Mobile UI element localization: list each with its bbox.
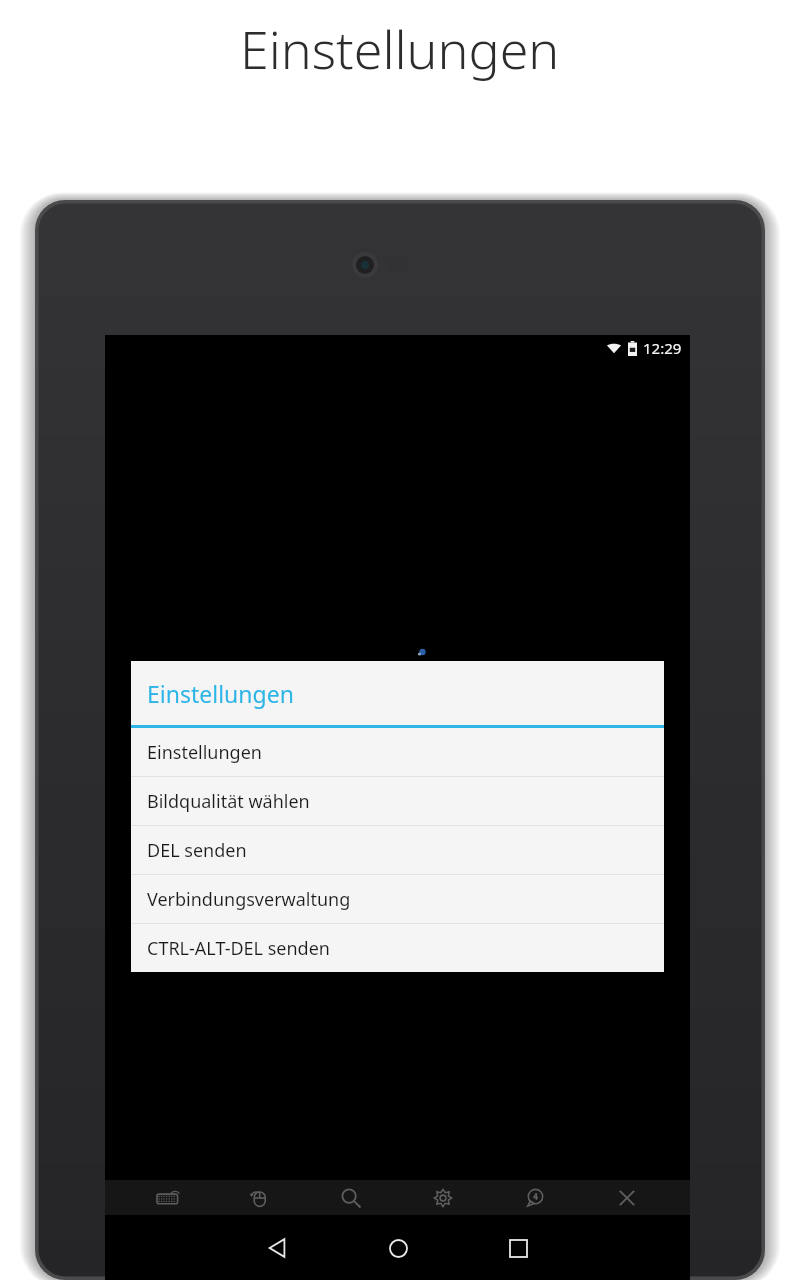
staticText: Einstellungen <box>240 13 560 84</box>
button[interactable]: Settings <box>426 1181 460 1215</box>
button[interactable]: Search <box>334 1181 368 1215</box>
button[interactable]: Close <box>610 1181 644 1215</box>
button[interactable]: Mouse <box>242 1181 276 1215</box>
button[interactable]: Einstellungen <box>131 728 664 776</box>
staticText: Verbindungsverwaltung <box>147 887 351 912</box>
button[interactable]: CTRL-ALT-DEL senden <box>131 924 664 972</box>
button[interactable]: Verbindungsverwaltung <box>131 875 664 923</box>
staticText: Bildqualität wählen <box>147 789 310 814</box>
staticText: CTRL-ALT-DEL senden <box>147 936 330 961</box>
button[interactable]: Messages <box>518 1181 552 1215</box>
staticText: Einstellungen <box>147 678 294 709</box>
staticText: DEL senden <box>147 838 247 863</box>
button[interactable]: Bildqualität wählen <box>131 777 664 825</box>
button[interactable]: DEL senden <box>131 826 664 874</box>
staticText: Einstellungen <box>147 740 262 765</box>
button[interactable]: Keyboard <box>151 1181 185 1215</box>
button[interactable]: Recents <box>488 1218 548 1278</box>
button[interactable]: Home <box>368 1218 428 1278</box>
staticText: 12:29 <box>643 338 682 358</box>
button[interactable]: Back <box>248 1218 308 1278</box>
